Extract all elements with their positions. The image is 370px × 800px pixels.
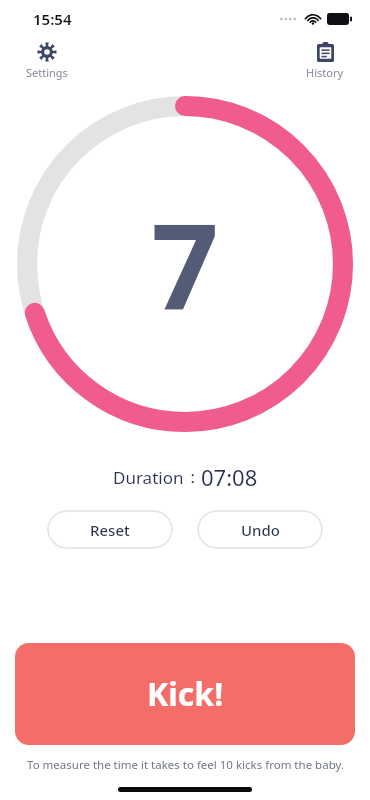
staticText: 7 [151,184,219,345]
button[interactable]: Settings [20,38,74,84]
button[interactable]: Undo [197,510,323,549]
staticText: 15:54 [33,9,72,29]
staticText: 07:08 [201,462,258,492]
staticText: Reset [90,520,130,540]
button[interactable]: History [300,38,350,84]
staticText: To measure the time it takes to feel 10 … [27,757,344,773]
staticText: Kick! [147,672,224,716]
staticText: Undo [241,520,280,540]
button[interactable]: Kick! [15,643,355,745]
button[interactable]: Reset [47,510,173,549]
staticText: History [306,65,344,80]
staticText: Duration [113,466,184,489]
staticText: Settings [26,65,68,80]
staticText: ： [184,467,201,488]
